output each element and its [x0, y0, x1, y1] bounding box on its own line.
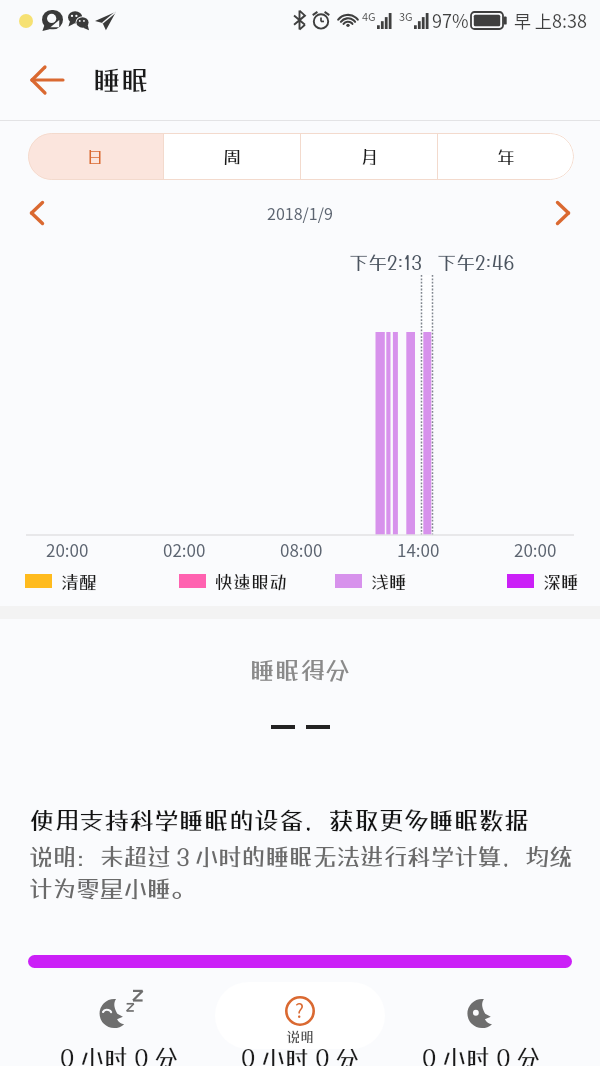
staticText: 4G	[362, 8, 376, 24]
staticText: 02:00	[163, 537, 206, 562]
button[interactable]: 深睡	[507, 566, 579, 596]
staticText: 清醒	[61, 571, 97, 592]
button[interactable]: 清醒	[25, 566, 97, 596]
button[interactable]: 月	[301, 133, 437, 180]
staticText: 睡眠得分	[250, 655, 351, 684]
button[interactable]: 日	[28, 133, 163, 180]
staticText: 浅睡	[371, 571, 407, 592]
staticText: 下午2:13	[349, 251, 422, 273]
staticText: 睡眠	[93, 64, 150, 97]
staticText: 0 小时 0 分	[241, 1043, 360, 1066]
staticText: 14:00	[397, 537, 440, 562]
staticText: 2018/1/9	[267, 201, 333, 224]
staticText: 月	[360, 146, 378, 167]
button[interactable]: Previous day	[18, 194, 56, 232]
staticText: 3G	[399, 8, 413, 24]
button[interactable]: 年	[438, 133, 574, 180]
staticText: 8:38	[552, 7, 587, 33]
staticText: 使用支持科学睡眠的设备，获取更多睡眠数据	[29, 805, 530, 834]
staticText: 20:00	[46, 537, 89, 562]
staticText: 说明	[286, 1028, 314, 1045]
button[interactable]: Next day	[544, 194, 582, 232]
staticText: 说明：未超过 3 小时的睡眠无法进行科学计算，均统计为零星小睡。	[29, 842, 574, 903]
staticText: 日	[87, 147, 104, 166]
button[interactable]: 快速眼动	[179, 566, 287, 596]
button[interactable]: Back	[16, 49, 78, 111]
staticText: 20:00	[514, 537, 557, 562]
staticText: 深睡	[543, 571, 579, 592]
button[interactable]: ?	[215, 982, 385, 1049]
staticText: 0 小时 0 分	[60, 1043, 179, 1066]
staticText: 下午2:46	[437, 251, 515, 273]
staticText: 快速眼动	[215, 571, 287, 592]
button[interactable]: 周	[164, 133, 300, 180]
staticText: 年	[497, 146, 515, 167]
button[interactable]: 浅睡	[335, 566, 407, 596]
staticText: 周	[223, 146, 241, 167]
staticText: 08:00	[280, 537, 323, 562]
staticText: ?	[295, 996, 305, 1024]
staticText: 97%	[432, 7, 469, 33]
staticText: 0 小时 0 分	[422, 1043, 541, 1066]
staticText: 早 上	[514, 8, 552, 33]
